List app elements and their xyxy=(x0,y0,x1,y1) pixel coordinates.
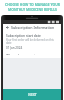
staticText: CHOOSE HOW TO MANAGE YOUR xyxy=(5,2,60,7)
button[interactable]: NEXT xyxy=(3,89,61,100)
staticText: Subscription Information xyxy=(11,25,55,30)
staticText: NEXT xyxy=(28,93,37,97)
button[interactable]: Back xyxy=(5,25,10,30)
staticText: Your first order will be delivered on th… xyxy=(6,38,58,44)
staticText: MONTHLY MEDICINE REFILLS xyxy=(8,7,57,12)
button[interactable]: 01 Jan 2024 xyxy=(6,46,58,50)
staticText: Where do you want your medicines? xyxy=(6,54,58,55)
staticText: Subscription start date xyxy=(6,34,41,38)
staticText: 01 Jan 2024 xyxy=(6,46,23,50)
